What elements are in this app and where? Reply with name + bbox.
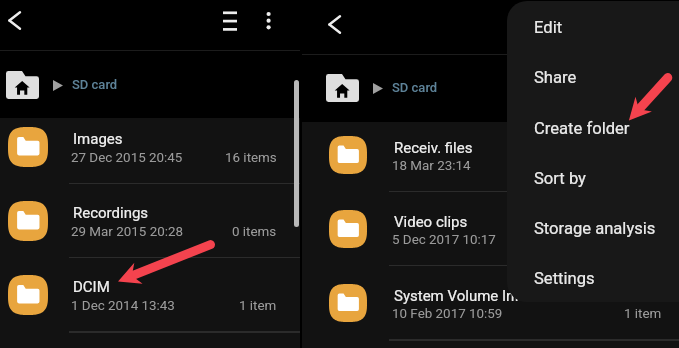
staticText: Create folder: [534, 119, 630, 138]
staticText: SD card: [72, 77, 118, 92]
button[interactable]: System Volume Information: [302, 266, 679, 340]
staticText: Recordings: [73, 204, 149, 222]
staticText: SD card: [392, 80, 438, 95]
staticText: 29 Mar 2015 20:28: [71, 224, 183, 240]
button[interactable]: More options: [247, 0, 291, 44]
button[interactable]: Navigate up: [0, 0, 44, 44]
button[interactable]: DCIM: [0, 258, 300, 332]
button[interactable]: Video clips: [302, 192, 679, 266]
button[interactable]: Share: [507, 51, 679, 101]
staticText: 16 items: [225, 150, 277, 166]
button[interactable]: Images: [0, 110, 300, 184]
staticText: Settings: [534, 269, 595, 288]
staticText: System Volume Information: [394, 287, 580, 305]
staticText: Share: [534, 68, 577, 87]
button[interactable]: Settings: [507, 252, 679, 302]
staticText: Edit: [534, 18, 563, 37]
button[interactable]: View as list: [208, 0, 252, 44]
staticText: 27 Dec 2015 20:45: [71, 150, 183, 166]
staticText: 5 Dec 2017 10:17: [392, 232, 496, 248]
staticText: Storage analysis: [534, 219, 656, 238]
button[interactable]: Edit: [507, 1, 679, 51]
staticText: 0 items: [232, 224, 277, 240]
staticText: Sort by: [534, 169, 586, 188]
button[interactable]: Navigate up: [302, 0, 346, 44]
staticText: 1 item: [239, 298, 277, 314]
staticText: 10 Feb 2017 10:59: [392, 306, 503, 322]
button[interactable]: SD card: [326, 74, 438, 102]
staticText: Receiv. files: [394, 139, 473, 157]
staticText: Video clips: [394, 213, 468, 231]
button[interactable]: SD card: [6, 71, 118, 99]
button[interactable]: Receiv. files: [302, 118, 679, 192]
button[interactable]: Create folder: [507, 102, 679, 152]
button[interactable]: Recordings: [0, 184, 300, 258]
staticText: 1 item: [624, 306, 662, 322]
staticText: 1 Dec 2014 13:43: [71, 298, 175, 314]
staticText: 18 Mar 23:14: [392, 158, 471, 174]
staticText: Images: [73, 130, 123, 148]
staticText: DCIM: [73, 278, 110, 296]
button[interactable]: Sort by: [507, 152, 679, 202]
button[interactable]: Storage analysis: [507, 202, 679, 252]
